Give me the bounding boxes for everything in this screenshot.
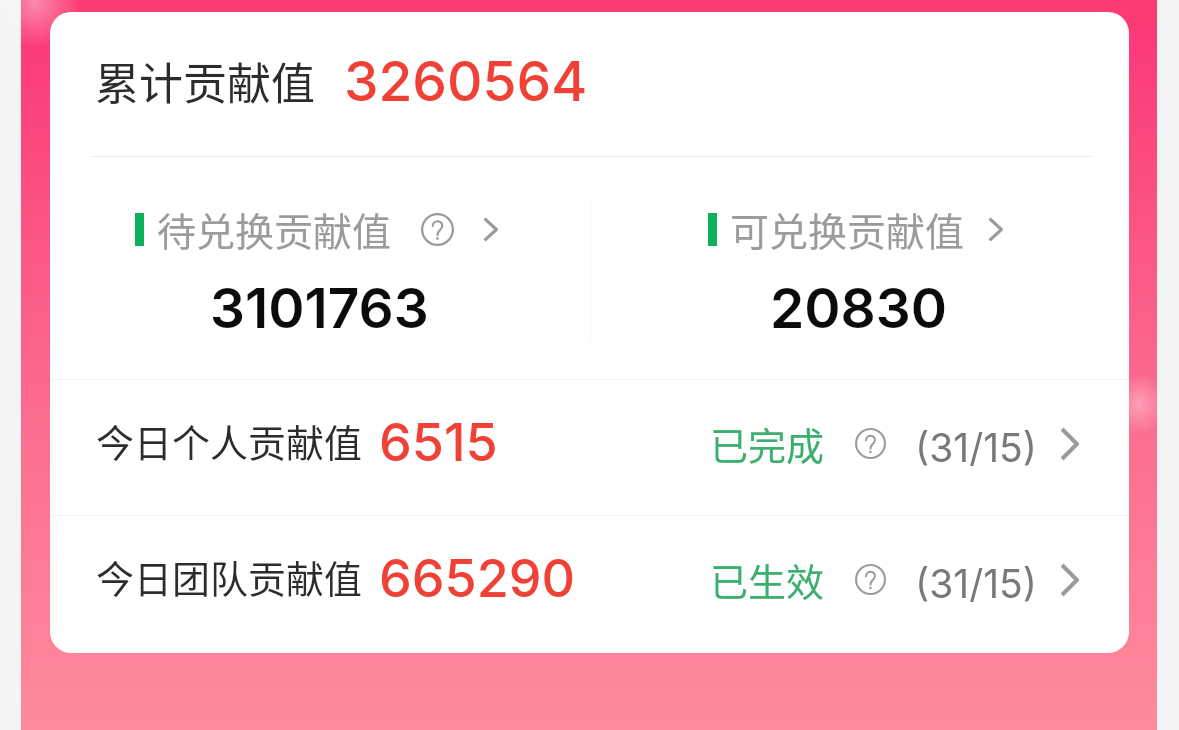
staticText: (31/15) [915, 560, 1038, 607]
button[interactable]: 今日个人贡献值 [50, 380, 1129, 515]
button[interactable]: 可兑换贡献值 [590, 157, 1129, 379]
staticText: 3260564 [344, 48, 588, 115]
button[interactable]: 今日团队贡献值 [50, 516, 1129, 651]
staticText: 6515 [379, 411, 498, 474]
button[interactable]: 查看详情 [1060, 563, 1079, 597]
staticText: 累计贡献值 [95, 49, 315, 113]
staticText: 待兑换贡献值 [157, 201, 392, 257]
button[interactable]: 贡献值说明 [421, 213, 454, 246]
staticText: 可兑换贡献值 [730, 201, 965, 257]
staticText: 今日个人贡献值 [96, 413, 363, 468]
staticText: 已生效 [710, 552, 825, 607]
staticText: 已完成 [710, 416, 825, 471]
staticText: 665290 [379, 547, 576, 610]
button[interactable]: 查看详情 [1060, 427, 1079, 461]
staticText: 今日团队贡献值 [96, 549, 363, 604]
button[interactable]: 查看详情 [988, 217, 1003, 242]
button[interactable]: 查看详情 [483, 217, 498, 242]
staticText: 20830 [770, 275, 948, 342]
button[interactable]: 待兑换贡献值 [50, 157, 590, 379]
button[interactable]: 贡献值说明 [855, 428, 886, 459]
staticText: (31/15) [915, 424, 1038, 471]
button[interactable]: 贡献值说明 [855, 564, 886, 595]
button[interactable]: 累计贡献值 [95, 46, 588, 113]
staticText: 3101763 [210, 275, 429, 342]
